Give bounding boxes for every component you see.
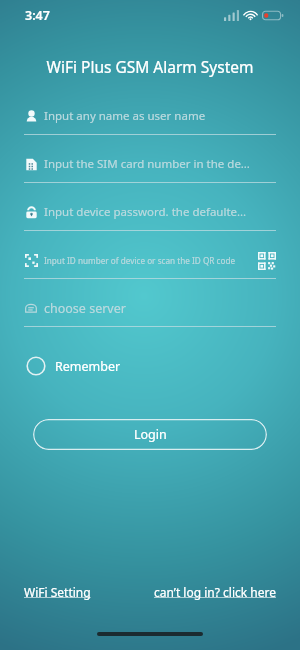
staticText: can’t log in? click here xyxy=(154,584,276,600)
button[interactable]: Input device password. the defaulte… xyxy=(24,194,276,242)
staticText: Input any name as user name xyxy=(44,108,276,124)
button[interactable]: can’t log in? click here xyxy=(154,584,276,600)
button[interactable]: Login xyxy=(33,419,267,450)
staticText: Input device password. the defaulte… xyxy=(44,204,276,220)
staticText: 3:47 xyxy=(25,7,50,24)
staticText: WiFi Plus GSM Alarm System xyxy=(0,56,300,77)
staticText: Input the SIM card number in the de… xyxy=(44,156,276,172)
staticText: Input ID number of device or scan the ID… xyxy=(44,255,254,266)
button[interactable]: Input the SIM card number in the de… xyxy=(24,146,276,194)
button[interactable]: Input any name as user name xyxy=(24,98,276,146)
staticText: WiFi Setting xyxy=(24,584,91,600)
button[interactable]: choose server xyxy=(24,290,276,338)
button[interactable]: WiFi Setting xyxy=(24,584,91,600)
button[interactable]: Scan QR code xyxy=(257,251,276,270)
button[interactable]: Remember xyxy=(24,351,123,381)
staticText: choose server xyxy=(44,300,276,317)
staticText: Login xyxy=(134,426,167,443)
button[interactable]: Input ID number of device or scan the ID… xyxy=(24,242,276,290)
staticText: Remember xyxy=(55,358,121,375)
